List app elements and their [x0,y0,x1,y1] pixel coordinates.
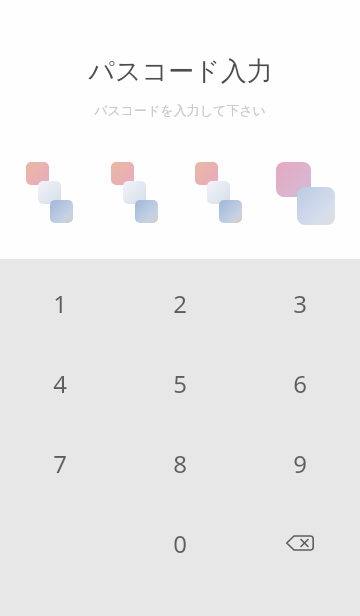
button[interactable]: 7 [0,423,120,503]
staticText: パスコードを入力して下さい [94,102,266,118]
button[interactable]: 5 [120,343,240,423]
button[interactable]: 3 [240,263,360,343]
staticText: 6 [293,367,307,400]
staticText: 4 [53,367,67,400]
button[interactable]: 4 [0,343,120,423]
button[interactable]: 9 [240,423,360,503]
staticText: 7 [53,447,67,480]
staticText: 2 [173,287,187,320]
staticText: パスコード入力 [88,55,273,88]
staticText: 0 [173,527,187,560]
staticText: 3 [293,287,307,320]
button[interactable]: Backspace [240,503,360,583]
staticText: 8 [173,447,187,480]
staticText: 5 [173,367,187,400]
button[interactable]: 6 [240,343,360,423]
button[interactable]: 2 [120,263,240,343]
staticText: 9 [293,447,307,480]
button[interactable]: 0 [120,503,240,583]
staticText: 1 [53,287,67,320]
button[interactable]: 8 [120,423,240,503]
button[interactable]: 1 [0,263,120,343]
